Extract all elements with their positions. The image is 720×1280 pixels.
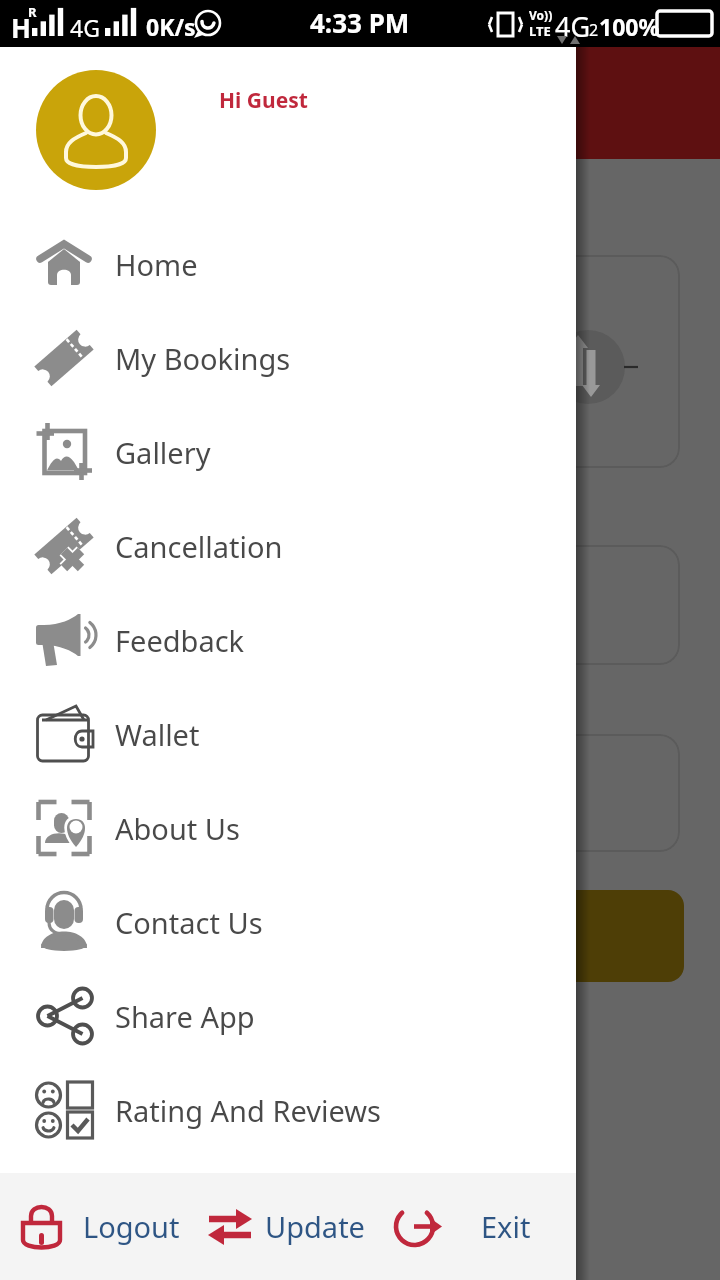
staticText: Vo)) — [529, 7, 553, 23]
other: Update — [205, 1202, 255, 1252]
staticText: Logout — [83, 1207, 180, 1246]
button[interactable]: Feedback — [0, 593, 576, 687]
staticText: Home — [115, 245, 198, 284]
button[interactable]: Contact Us — [0, 875, 576, 969]
staticText: Rating And Reviews — [115, 1091, 381, 1130]
staticText: Update — [265, 1207, 365, 1246]
staticText: Gallery — [115, 433, 211, 472]
staticText: Feedback — [115, 621, 245, 660]
staticText: 0K/s — [146, 11, 196, 42]
button[interactable]: My Bookings — [0, 311, 576, 405]
other: Exit — [393, 1202, 443, 1252]
staticText: 4G — [70, 12, 100, 43]
staticText: Wallet — [115, 715, 200, 754]
button[interactable]: Home — [0, 217, 576, 311]
button[interactable]: Update — [205, 1173, 365, 1280]
button[interactable]: Exit — [393, 1173, 531, 1280]
button[interactable]: Wallet — [0, 687, 576, 781]
button[interactable]: Rating And Reviews — [0, 1063, 576, 1157]
staticText: Exit — [481, 1207, 531, 1246]
staticText: Cancellation — [115, 527, 283, 566]
staticText: Contact Us — [115, 903, 263, 942]
other: Logout — [19, 1202, 69, 1252]
staticText: About Us — [115, 809, 240, 848]
staticText: H — [11, 10, 31, 45]
staticText: LTE — [529, 22, 551, 40]
staticText: My Bookings — [115, 339, 291, 378]
staticText: R — [28, 3, 37, 21]
staticText: 2 — [589, 19, 599, 41]
staticText: 4:33 PM — [310, 5, 410, 40]
staticText: Share App — [115, 997, 255, 1036]
button[interactable]: Logout — [19, 1173, 180, 1280]
button[interactable]: Gallery — [0, 405, 576, 499]
button[interactable]: Cancellation — [0, 499, 576, 593]
staticText: 100% — [599, 11, 660, 42]
button[interactable]: Share App — [0, 969, 576, 1063]
staticText: 4G — [555, 8, 591, 45]
button[interactable]: About Us — [0, 781, 576, 875]
staticText: Hi Guest — [219, 86, 308, 115]
